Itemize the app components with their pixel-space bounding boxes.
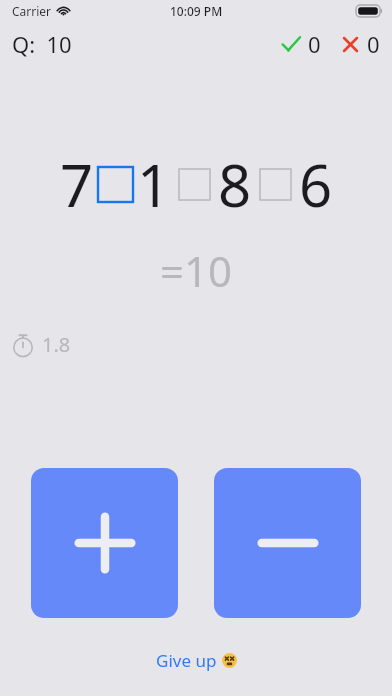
staticText: 0 <box>367 29 380 59</box>
button[interactable]: Minus <box>214 468 361 618</box>
button[interactable]: Plus <box>31 468 178 618</box>
staticText: Carrier <box>12 3 52 19</box>
staticText: 6 <box>299 145 333 224</box>
staticText: =10 <box>0 242 392 299</box>
staticText: 7 <box>60 145 94 224</box>
staticText: Q: 10 <box>12 29 72 59</box>
staticText: 10:09 PM <box>170 3 223 19</box>
staticText: 0 <box>308 29 321 59</box>
button[interactable]: Give up <box>146 645 247 676</box>
staticText: 1.8 <box>42 331 71 358</box>
staticText: 1 <box>137 145 171 224</box>
staticText: Give up <box>156 649 217 672</box>
staticText: 8 <box>218 145 252 224</box>
